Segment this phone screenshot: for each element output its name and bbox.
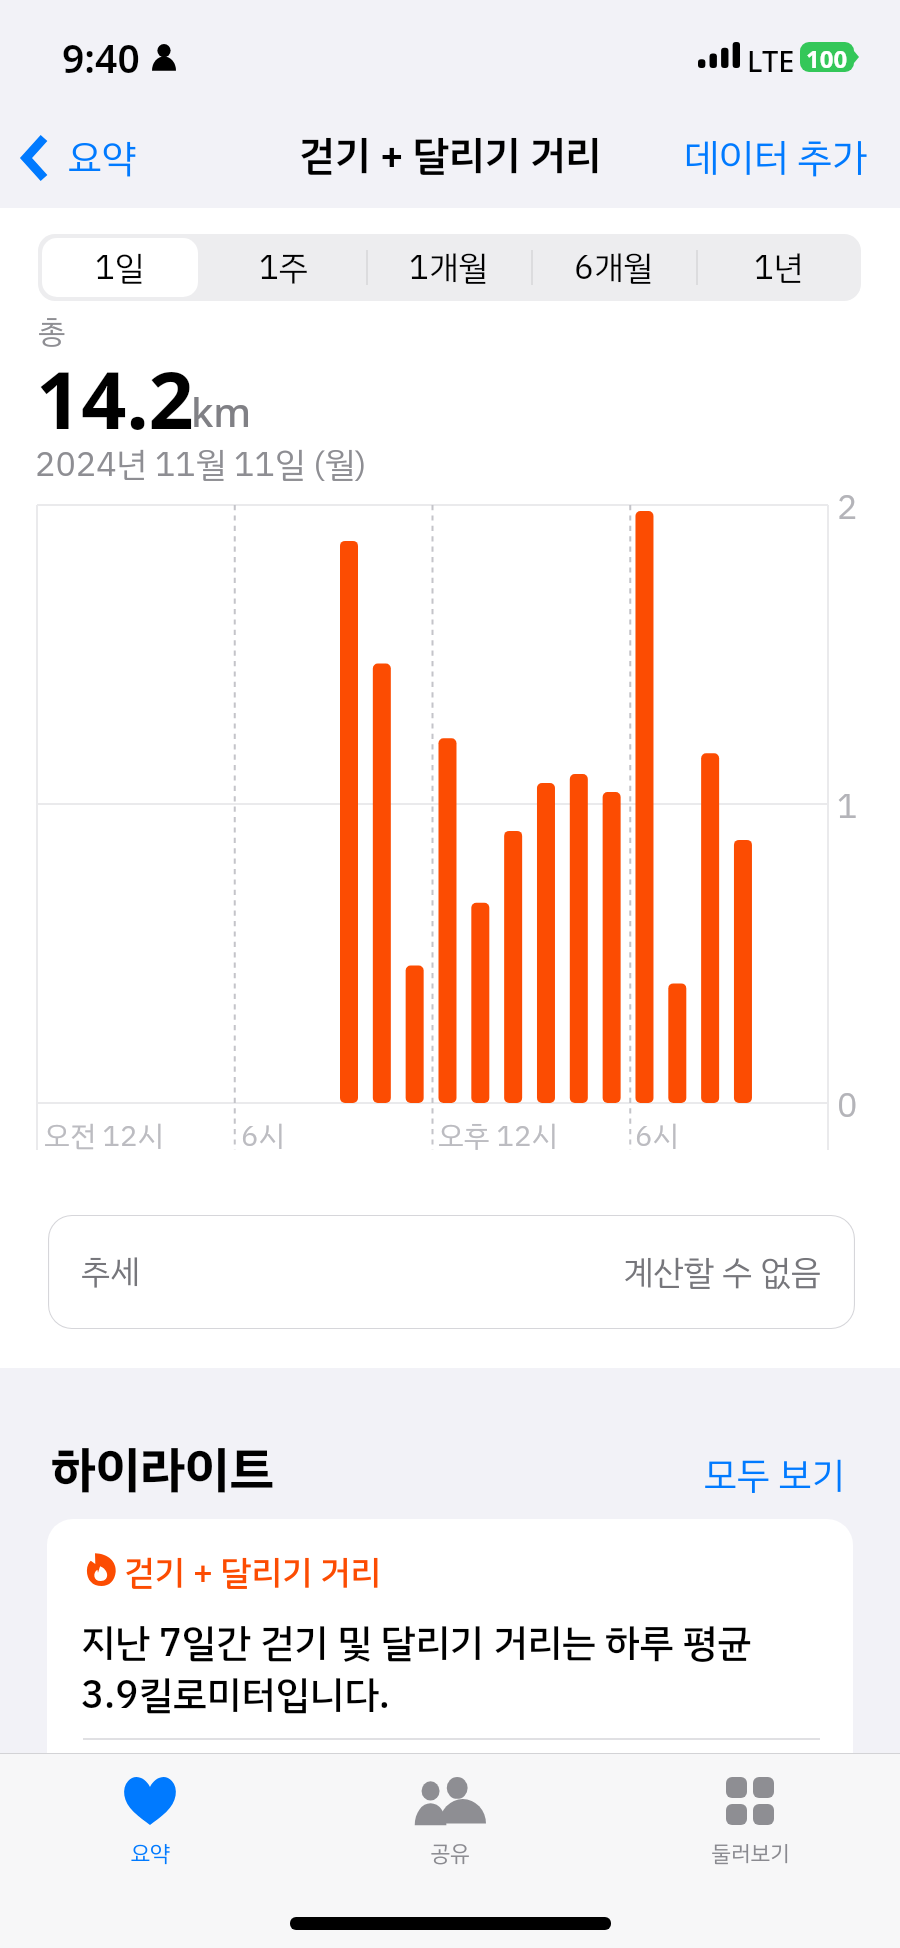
- staticText: 6개월: [574, 243, 653, 293]
- staticText: km: [191, 384, 252, 438]
- staticText: LTE: [747, 41, 795, 80]
- staticText: 지난 7일간 걷기 및 달리기 거리는 하루 평균 3.9킬로미터입니다.: [81, 1614, 752, 1724]
- staticText: 요약: [130, 1837, 170, 1870]
- other: 둘러보기: [726, 1777, 774, 1825]
- staticText: 공유: [430, 1837, 470, 1870]
- staticText: 데이터 추가: [684, 129, 868, 188]
- button[interactable]: 둘러보기: [600, 1754, 900, 1884]
- staticText: 오전 12시: [44, 1115, 164, 1159]
- button[interactable]: 추세: [48, 1215, 855, 1329]
- staticText: 하이라이트: [51, 1433, 274, 1508]
- staticText: 오후 12시: [438, 1115, 558, 1159]
- other: 공유: [414, 1777, 486, 1825]
- button[interactable]: 1주: [202, 234, 366, 301]
- staticText: 계산할 수 없음: [623, 1247, 822, 1298]
- staticText: 1: [837, 781, 858, 832]
- staticText: 6시: [241, 1115, 285, 1159]
- staticText: 모두 보기: [704, 1448, 845, 1504]
- button[interactable]: 요약: [0, 1754, 300, 1884]
- button[interactable]: 공유: [300, 1754, 600, 1884]
- button[interactable]: 1년: [696, 234, 861, 301]
- button[interactable]: 요약: [0, 118, 162, 198]
- staticText: 14.2: [36, 345, 194, 453]
- staticText: 둘러보기: [711, 1837, 790, 1870]
- button[interactable]: 모두 보기: [649, 1438, 900, 1514]
- staticText: 100: [806, 42, 848, 72]
- staticText: 0: [837, 1080, 858, 1131]
- button[interactable]: 걷기 + 달리기 거리: [47, 1519, 853, 1799]
- staticText: 2: [837, 482, 858, 533]
- staticText: 걷기 + 달리기 거리: [124, 1547, 381, 1598]
- staticText: 요약: [68, 130, 136, 187]
- button[interactable]: 1개월: [366, 234, 531, 301]
- staticText: 1일: [95, 243, 145, 293]
- staticText: 1년: [754, 243, 804, 293]
- staticText: 9:40: [62, 31, 140, 84]
- button[interactable]: 데이터 추가: [652, 118, 900, 198]
- staticText: 걷기 + 달리기 거리: [299, 126, 602, 186]
- staticText: 총: [38, 308, 66, 355]
- other: 요약: [123, 1776, 177, 1825]
- button[interactable]: 6개월: [531, 234, 696, 301]
- staticText: 6시: [635, 1115, 679, 1159]
- staticText: 2024년 11월 11일 (월): [35, 439, 367, 490]
- staticText: 1개월: [409, 243, 488, 293]
- staticText: 추세: [81, 1247, 140, 1297]
- button[interactable]: 1일: [38, 234, 202, 301]
- staticText: 1주: [259, 243, 309, 293]
